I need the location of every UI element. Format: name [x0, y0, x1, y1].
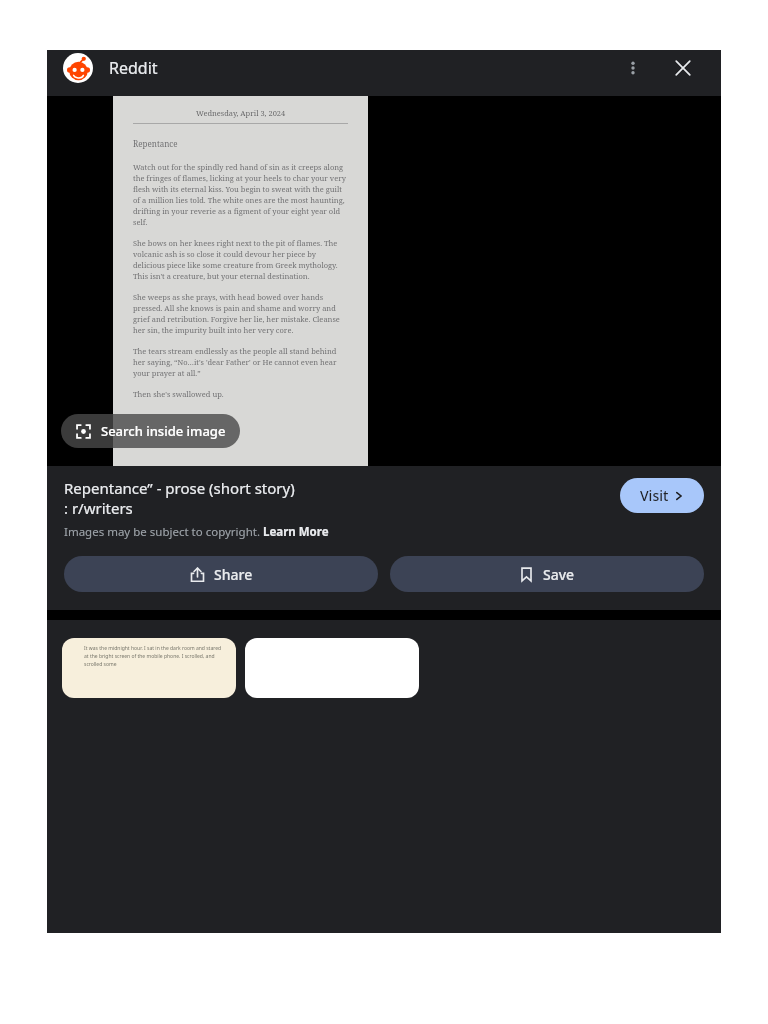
staticText: Watch out for the spindly red hand of si…	[133, 162, 348, 227]
staticText: She weeps as she prays, with head bowed …	[133, 292, 348, 335]
staticText: Visit	[640, 486, 669, 505]
button[interactable]: Share	[64, 556, 378, 592]
staticText: It was the midnight hour. I sat in the d…	[84, 645, 226, 668]
button[interactable]: It was the midnight hour. I sat in the d…	[62, 638, 236, 698]
staticText: Search inside image	[101, 422, 226, 440]
button[interactable]: Visit	[620, 478, 704, 513]
staticText: Wednesday, April 3, 2024	[196, 108, 286, 118]
button[interactable]: Search inside image	[61, 414, 240, 448]
staticText: The tears stream endlessly as the people…	[133, 346, 348, 378]
staticText: She bows on her knees right next to the …	[133, 238, 348, 281]
button[interactable]	[245, 638, 419, 698]
staticText: Then she's swallowed up.	[133, 389, 224, 399]
staticText: Images may be subject to copyright. Lear…	[64, 524, 329, 540]
staticText: Save	[543, 565, 575, 584]
staticText: Reddit	[109, 57, 158, 79]
staticText: Repentance” - prose (short story) : r/wr…	[64, 478, 610, 518]
staticText: Share	[214, 565, 253, 584]
button[interactable]: Close	[665, 50, 701, 86]
button[interactable]: Reddit	[63, 53, 93, 83]
staticText: Repentance	[133, 138, 178, 149]
button[interactable]: More options	[615, 50, 651, 86]
button[interactable]: Save	[390, 556, 704, 592]
